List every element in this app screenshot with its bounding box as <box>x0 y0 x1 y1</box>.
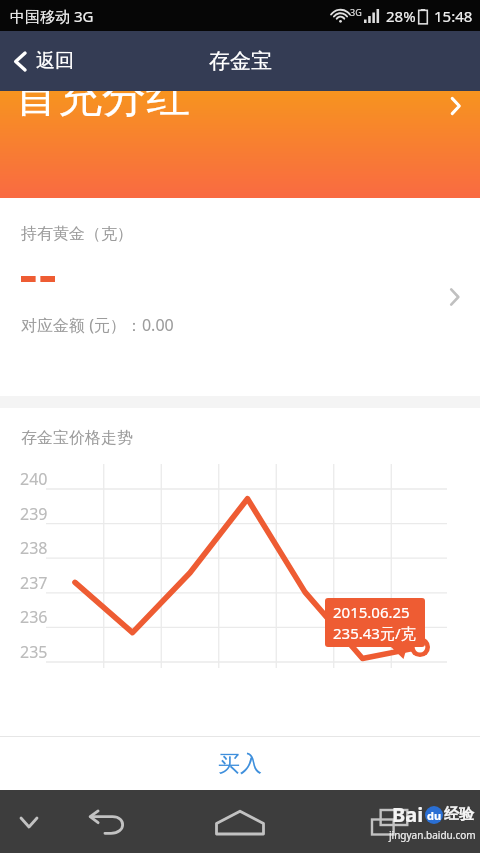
staticText: 持有黄金（克） <box>21 224 133 244</box>
staticText: 对应金额 (元）：0.00 <box>21 314 174 336</box>
staticText: jingyan.baidu.com <box>389 828 476 842</box>
staticText: Bai <box>392 801 424 828</box>
staticText: 235 <box>20 641 48 663</box>
staticText: 240 <box>20 468 48 490</box>
staticText: 返回 <box>36 49 74 73</box>
staticText: du <box>427 808 442 823</box>
staticText: 236 <box>20 606 48 628</box>
staticText: 存金宝 <box>209 48 272 74</box>
button[interactable]: Recents <box>362 794 418 850</box>
button[interactable]: 首充分红 <box>0 91 480 198</box>
button[interactable]: Hide <box>8 801 50 843</box>
button[interactable]: Back <box>80 794 136 850</box>
button[interactable]: 买入 <box>0 737 480 790</box>
button[interactable]: 返回 <box>0 37 90 85</box>
staticText: 235.43元/克 <box>333 623 416 643</box>
staticText: 239 <box>20 503 48 525</box>
staticText: 15:48 <box>434 6 473 26</box>
staticText: 首充分红 <box>14 91 190 124</box>
other: Holdings details <box>449 287 460 307</box>
button[interactable]: Home <box>209 791 271 853</box>
staticText: 买入 <box>218 750 262 778</box>
other: Open promotion <box>450 96 461 116</box>
staticText: 中国移动 3G <box>10 6 94 26</box>
staticText: 237 <box>20 572 48 594</box>
staticText: 238 <box>20 537 48 559</box>
staticText: 28% <box>386 6 416 26</box>
staticText: 经验 <box>444 805 474 824</box>
staticText: 3G <box>350 6 362 18</box>
staticText: 2015.06.25 <box>333 602 410 622</box>
button[interactable]: 持有黄金（克） <box>0 198 480 396</box>
staticText: 存金宝价格走势 <box>21 428 133 448</box>
